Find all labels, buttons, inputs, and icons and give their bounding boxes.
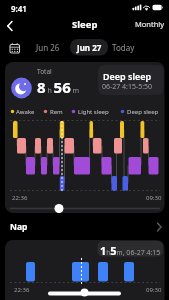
staticText: Nap <box>10 221 28 233</box>
button[interactable] <box>108 38 140 56</box>
staticText: Jun 26 <box>36 42 60 53</box>
staticText: Today <box>112 42 135 53</box>
staticText: 22:36 <box>12 194 28 202</box>
staticText: Deep sleep <box>103 70 152 82</box>
staticText: Total <box>37 67 52 76</box>
button[interactable] <box>6 40 24 56</box>
staticText: 06-27 4:15-5:50 <box>102 82 153 92</box>
staticText: Monthly <box>135 19 165 29</box>
staticText: Rem <box>50 108 63 116</box>
staticText: 09:30 <box>146 286 162 294</box>
staticText: Jun 27 <box>77 42 102 53</box>
staticText: 1h5m, 06-27 4:15 <box>100 243 161 258</box>
button[interactable] <box>5 240 164 300</box>
button[interactable] <box>130 16 166 32</box>
button[interactable] <box>5 62 164 213</box>
staticText: Awake <box>16 108 35 116</box>
button[interactable] <box>32 38 64 56</box>
button[interactable] <box>4 16 22 34</box>
button[interactable] <box>5 216 164 238</box>
staticText: Sleep <box>72 18 98 31</box>
staticText: 22:36 <box>14 286 30 294</box>
staticText: 9:41 <box>11 3 27 14</box>
button[interactable] <box>73 38 105 56</box>
staticText: Deep sleep <box>127 108 159 116</box>
staticText: 09:30 <box>146 194 162 202</box>
staticText: Light sleep <box>78 108 109 116</box>
staticText: 8 h 56 m <box>37 77 80 97</box>
